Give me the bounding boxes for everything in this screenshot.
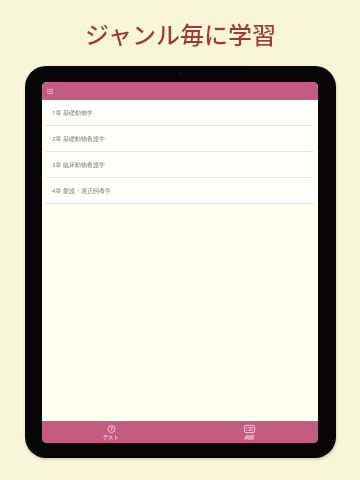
button[interactable]: 3章 臨床動物看護学 — [45, 152, 314, 178]
button[interactable]: 成績 — [180, 421, 318, 443]
staticText: ジャンル毎に学習 — [85, 16, 276, 51]
staticText: 4章 愛護・適正飼養学 — [52, 187, 111, 195]
button[interactable]: Menu — [42, 82, 318, 100]
button[interactable]: 4章 愛護・適正飼養学 — [45, 178, 314, 204]
button[interactable]: 2章 基礎動物看護学 — [45, 126, 314, 152]
staticText: 1章 基礎動物学 — [52, 109, 93, 117]
button[interactable]: 1章 基礎動物学 — [45, 100, 314, 126]
button[interactable]: テスト — [42, 421, 180, 443]
staticText: 2章 基礎動物看護学 — [52, 135, 105, 143]
staticText: ? — [110, 425, 113, 433]
staticText: テスト — [103, 434, 119, 440]
staticText: 3章 臨床動物看護学 — [52, 161, 105, 169]
staticText: 成績 — [244, 434, 255, 440]
button[interactable]: Menu — [47, 89, 53, 94]
